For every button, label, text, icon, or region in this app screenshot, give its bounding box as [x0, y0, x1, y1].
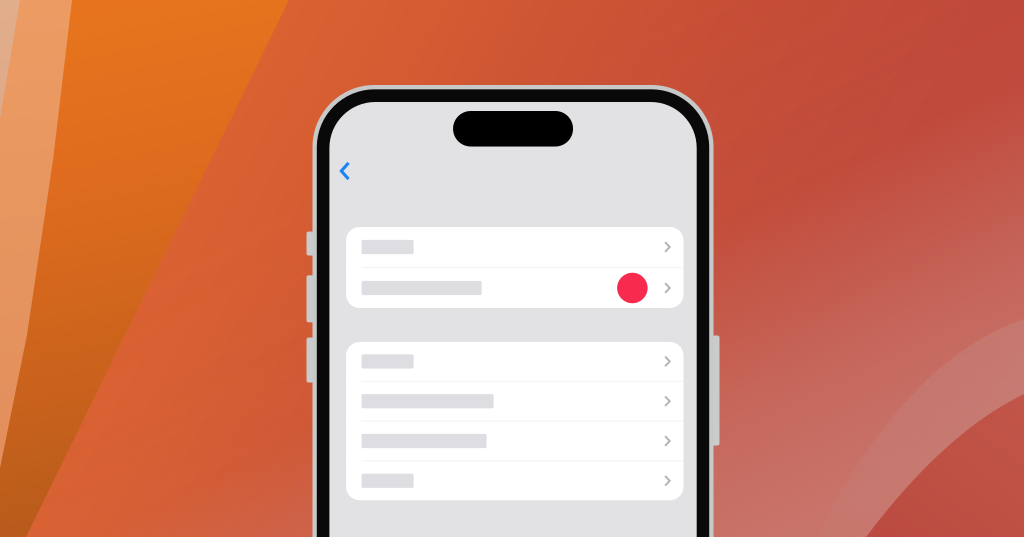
button[interactable]: List item: [346, 422, 683, 460]
button[interactable]: Back: [330, 155, 360, 186]
button[interactable]: List item: [346, 461, 683, 500]
button[interactable]: List item: [346, 382, 683, 421]
button[interactable]: List item: [346, 268, 683, 308]
button[interactable]: List item: [346, 227, 683, 267]
button[interactable]: List item: [346, 342, 683, 381]
